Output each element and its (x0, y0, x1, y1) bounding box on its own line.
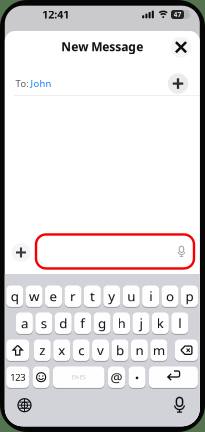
staticText: f (80, 314, 85, 332)
staticText: z (39, 341, 45, 359)
button[interactable]: @ (108, 366, 125, 388)
button[interactable]: r (64, 285, 81, 307)
button[interactable]: n (131, 339, 148, 361)
staticText: e (49, 287, 57, 305)
button[interactable]: Return (149, 366, 198, 388)
staticText: s (41, 314, 47, 332)
staticText: u (127, 287, 135, 305)
staticText: t (90, 287, 95, 305)
staticText: l (178, 314, 181, 332)
staticText: y (108, 287, 115, 305)
staticText: v (97, 341, 104, 359)
button[interactable]: d (55, 312, 72, 334)
button[interactable]: f (74, 312, 91, 334)
staticText: g (98, 314, 106, 332)
staticText: p (185, 287, 193, 305)
button[interactable]: z (34, 339, 51, 361)
staticText: New Message (61, 39, 143, 55)
button[interactable]: u (123, 285, 140, 307)
button[interactable]: Add Attachment (11, 243, 30, 262)
button[interactable]: Dictation (173, 397, 185, 413)
button[interactable]: g (94, 312, 111, 334)
button[interactable]: Shift (6, 339, 29, 361)
button[interactable]: q (6, 285, 23, 307)
staticText: EN ES (72, 374, 86, 381)
button[interactable]: Message Text Field (36, 234, 194, 268)
button[interactable]: v (92, 339, 109, 361)
button[interactable]: Next Keyboard (18, 399, 31, 412)
button[interactable]: s (35, 312, 52, 334)
staticText: John (30, 77, 51, 89)
button[interactable]: j (132, 312, 149, 334)
button[interactable]: i (142, 285, 159, 307)
button[interactable]: m (150, 339, 167, 361)
staticText: 123 (10, 371, 25, 383)
button[interactable]: Add Contact (168, 73, 188, 94)
button[interactable]: b (111, 339, 128, 361)
button[interactable]: w (26, 285, 43, 307)
button[interactable]: t (84, 285, 101, 307)
staticText: d (59, 314, 67, 332)
button[interactable]: Emoji (33, 366, 50, 388)
button[interactable]: Period (128, 366, 145, 388)
staticText: k (157, 314, 164, 332)
staticText: w (29, 287, 39, 305)
staticText: o (166, 287, 174, 305)
staticText: @ (110, 368, 122, 386)
button[interactable]: y (103, 285, 120, 307)
staticText: m (153, 341, 165, 359)
staticText: n (135, 341, 143, 359)
button[interactable]: Space (53, 366, 104, 388)
staticText: i (149, 287, 152, 305)
staticText: a (21, 314, 28, 332)
staticText: 47 (173, 10, 181, 19)
staticText: h (117, 314, 125, 332)
button[interactable]: c (73, 339, 90, 361)
staticText: q (11, 287, 19, 305)
button[interactable]: k (152, 312, 169, 334)
staticText: To: (15, 77, 29, 89)
button[interactable]: Delete (175, 339, 198, 361)
staticText: c (78, 341, 84, 359)
staticText: j (139, 314, 142, 332)
button[interactable]: Close (170, 37, 191, 58)
button[interactable]: a (16, 312, 33, 334)
staticText: x (58, 341, 65, 359)
staticText: b (116, 341, 124, 359)
button[interactable]: h (113, 312, 130, 334)
button[interactable]: e (45, 285, 62, 307)
staticText: r (70, 287, 76, 305)
button[interactable]: p (181, 285, 198, 307)
button[interactable]: 123 (6, 366, 29, 388)
staticText: 12:41 (42, 7, 69, 21)
button[interactable]: l (171, 312, 188, 334)
button[interactable]: o (162, 285, 179, 307)
button[interactable]: x (53, 339, 70, 361)
